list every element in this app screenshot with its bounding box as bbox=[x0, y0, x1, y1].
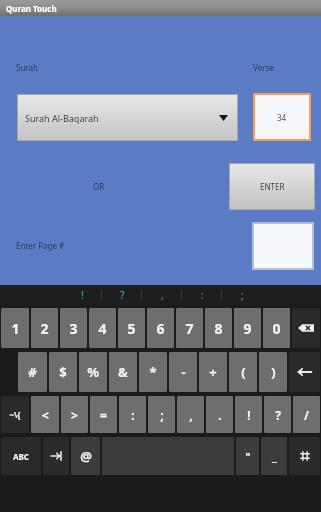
button[interactable]: 9 bbox=[234, 308, 261, 348]
button[interactable]: Tab bbox=[43, 437, 69, 475]
staticText: 7 bbox=[185, 319, 194, 338]
staticText: < bbox=[42, 407, 49, 423]
staticText: 6 bbox=[156, 319, 165, 338]
button[interactable]: , bbox=[177, 396, 204, 433]
button[interactable]: - bbox=[169, 352, 197, 392]
button[interactable]: ) bbox=[259, 352, 287, 392]
staticText: ( bbox=[241, 363, 246, 381]
button[interactable]: _ bbox=[261, 437, 287, 475]
staticText: Surah Al-Baqarah bbox=[25, 112, 99, 124]
staticText: ; bbox=[160, 407, 164, 423]
staticText: 8 bbox=[214, 319, 223, 338]
button[interactable]: < bbox=[31, 396, 59, 433]
staticText: : bbox=[201, 288, 204, 302]
staticText: " bbox=[245, 449, 251, 464]
button[interactable]: . bbox=[206, 396, 233, 433]
button[interactable]: + bbox=[199, 352, 227, 392]
staticText: ! bbox=[81, 288, 84, 302]
staticText: Enter Page # bbox=[16, 240, 65, 251]
button[interactable]: ; bbox=[222, 285, 262, 305]
staticText: 34 bbox=[277, 112, 287, 123]
button[interactable]: Surah Al-Baqarah bbox=[17, 94, 238, 141]
staticText: / bbox=[304, 407, 309, 423]
staticText: ! bbox=[247, 407, 251, 423]
staticText: # bbox=[28, 363, 37, 381]
button[interactable]: 8 bbox=[205, 308, 232, 348]
staticText: , bbox=[161, 288, 164, 302]
button[interactable]: ( bbox=[229, 352, 257, 392]
button[interactable]: * bbox=[139, 352, 167, 392]
button[interactable]: ABC bbox=[1, 437, 41, 475]
staticText: Quran Touch bbox=[6, 3, 57, 14]
button[interactable]: ! bbox=[235, 396, 262, 433]
button[interactable]: 3 bbox=[60, 308, 87, 348]
button[interactable]: ~\{ bbox=[1, 396, 29, 433]
button[interactable]: 0 bbox=[263, 308, 290, 348]
button[interactable]: $ bbox=[49, 352, 77, 392]
button[interactable]: 5 bbox=[118, 308, 145, 348]
button[interactable]: , bbox=[142, 285, 182, 305]
staticText: = bbox=[100, 407, 107, 423]
staticText: ) bbox=[271, 363, 276, 381]
staticText: * bbox=[149, 363, 157, 381]
button[interactable]: : bbox=[119, 396, 146, 433]
button[interactable]: 2 bbox=[31, 308, 58, 348]
staticText: % bbox=[87, 363, 99, 381]
staticText: 5 bbox=[127, 319, 136, 338]
button[interactable] bbox=[252, 222, 314, 270]
staticText: OR bbox=[93, 181, 105, 192]
staticText: ; bbox=[241, 288, 244, 302]
staticText: ? bbox=[120, 288, 125, 302]
button[interactable]: > bbox=[61, 396, 88, 433]
staticText: ENTER bbox=[260, 181, 285, 192]
button[interactable]: # bbox=[18, 352, 47, 392]
button[interactable]: Keyboard settings bbox=[289, 437, 320, 475]
staticText: : bbox=[131, 407, 135, 423]
button[interactable]: ? bbox=[264, 396, 291, 433]
staticText: & bbox=[118, 363, 128, 381]
staticText: ~\{ bbox=[9, 409, 21, 420]
button[interactable]: @ bbox=[71, 437, 100, 475]
button[interactable]: = bbox=[90, 396, 117, 433]
button[interactable]: 6 bbox=[147, 308, 174, 348]
button[interactable]: 4 bbox=[89, 308, 116, 348]
button[interactable]: ? bbox=[102, 285, 142, 305]
staticText: ? bbox=[275, 407, 281, 423]
staticText: > bbox=[71, 407, 78, 423]
staticText: _ bbox=[272, 448, 277, 464]
button[interactable]: / bbox=[293, 396, 320, 433]
staticText: 3 bbox=[69, 319, 78, 338]
button[interactable]: ENTER bbox=[229, 163, 315, 210]
staticText: Surah bbox=[16, 62, 38, 73]
button[interactable]: : bbox=[182, 285, 222, 305]
button[interactable]: 1 bbox=[1, 308, 29, 348]
button[interactable]: 7 bbox=[176, 308, 203, 348]
button[interactable]: ! bbox=[62, 285, 102, 305]
staticText: - bbox=[181, 363, 186, 381]
button[interactable]: Backspace bbox=[292, 308, 320, 348]
button[interactable]: % bbox=[79, 352, 107, 392]
button[interactable]: 34 bbox=[253, 93, 311, 141]
staticText: ABC bbox=[13, 451, 29, 462]
staticText: 2 bbox=[40, 319, 49, 338]
staticText: + bbox=[209, 363, 217, 381]
staticText: $ bbox=[59, 363, 67, 381]
button[interactable]: Return bbox=[289, 352, 320, 392]
staticText: 1 bbox=[11, 319, 20, 338]
staticText: , bbox=[189, 407, 193, 423]
staticText: 9 bbox=[243, 319, 252, 338]
button[interactable]: & bbox=[109, 352, 137, 392]
staticText: . bbox=[218, 407, 222, 423]
staticText: Verse bbox=[253, 62, 274, 73]
staticText: 4 bbox=[98, 319, 107, 338]
staticText: @ bbox=[80, 447, 92, 465]
staticText: 0 bbox=[272, 319, 281, 338]
button[interactable]: ; bbox=[148, 396, 175, 433]
button[interactable]: " bbox=[236, 437, 259, 475]
